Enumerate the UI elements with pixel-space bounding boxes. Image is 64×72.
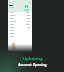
- button[interactable]: [10, 30, 30, 31]
- button[interactable]: [10, 15, 30, 16]
- button[interactable]: Profile: [25, 5, 28, 8]
- button[interactable]: [10, 12, 30, 13]
- button[interactable]: [10, 36, 30, 37]
- button[interactable]: [10, 33, 30, 34]
- staticText: Lightning: [22, 56, 43, 62]
- staticText: Account Opening: [18, 62, 47, 66]
- button[interactable]: [10, 24, 30, 25]
- button[interactable]: [10, 18, 30, 19]
- button[interactable]: [10, 27, 30, 28]
- button[interactable]: [10, 21, 30, 22]
- button[interactable]: [24, 9, 29, 11]
